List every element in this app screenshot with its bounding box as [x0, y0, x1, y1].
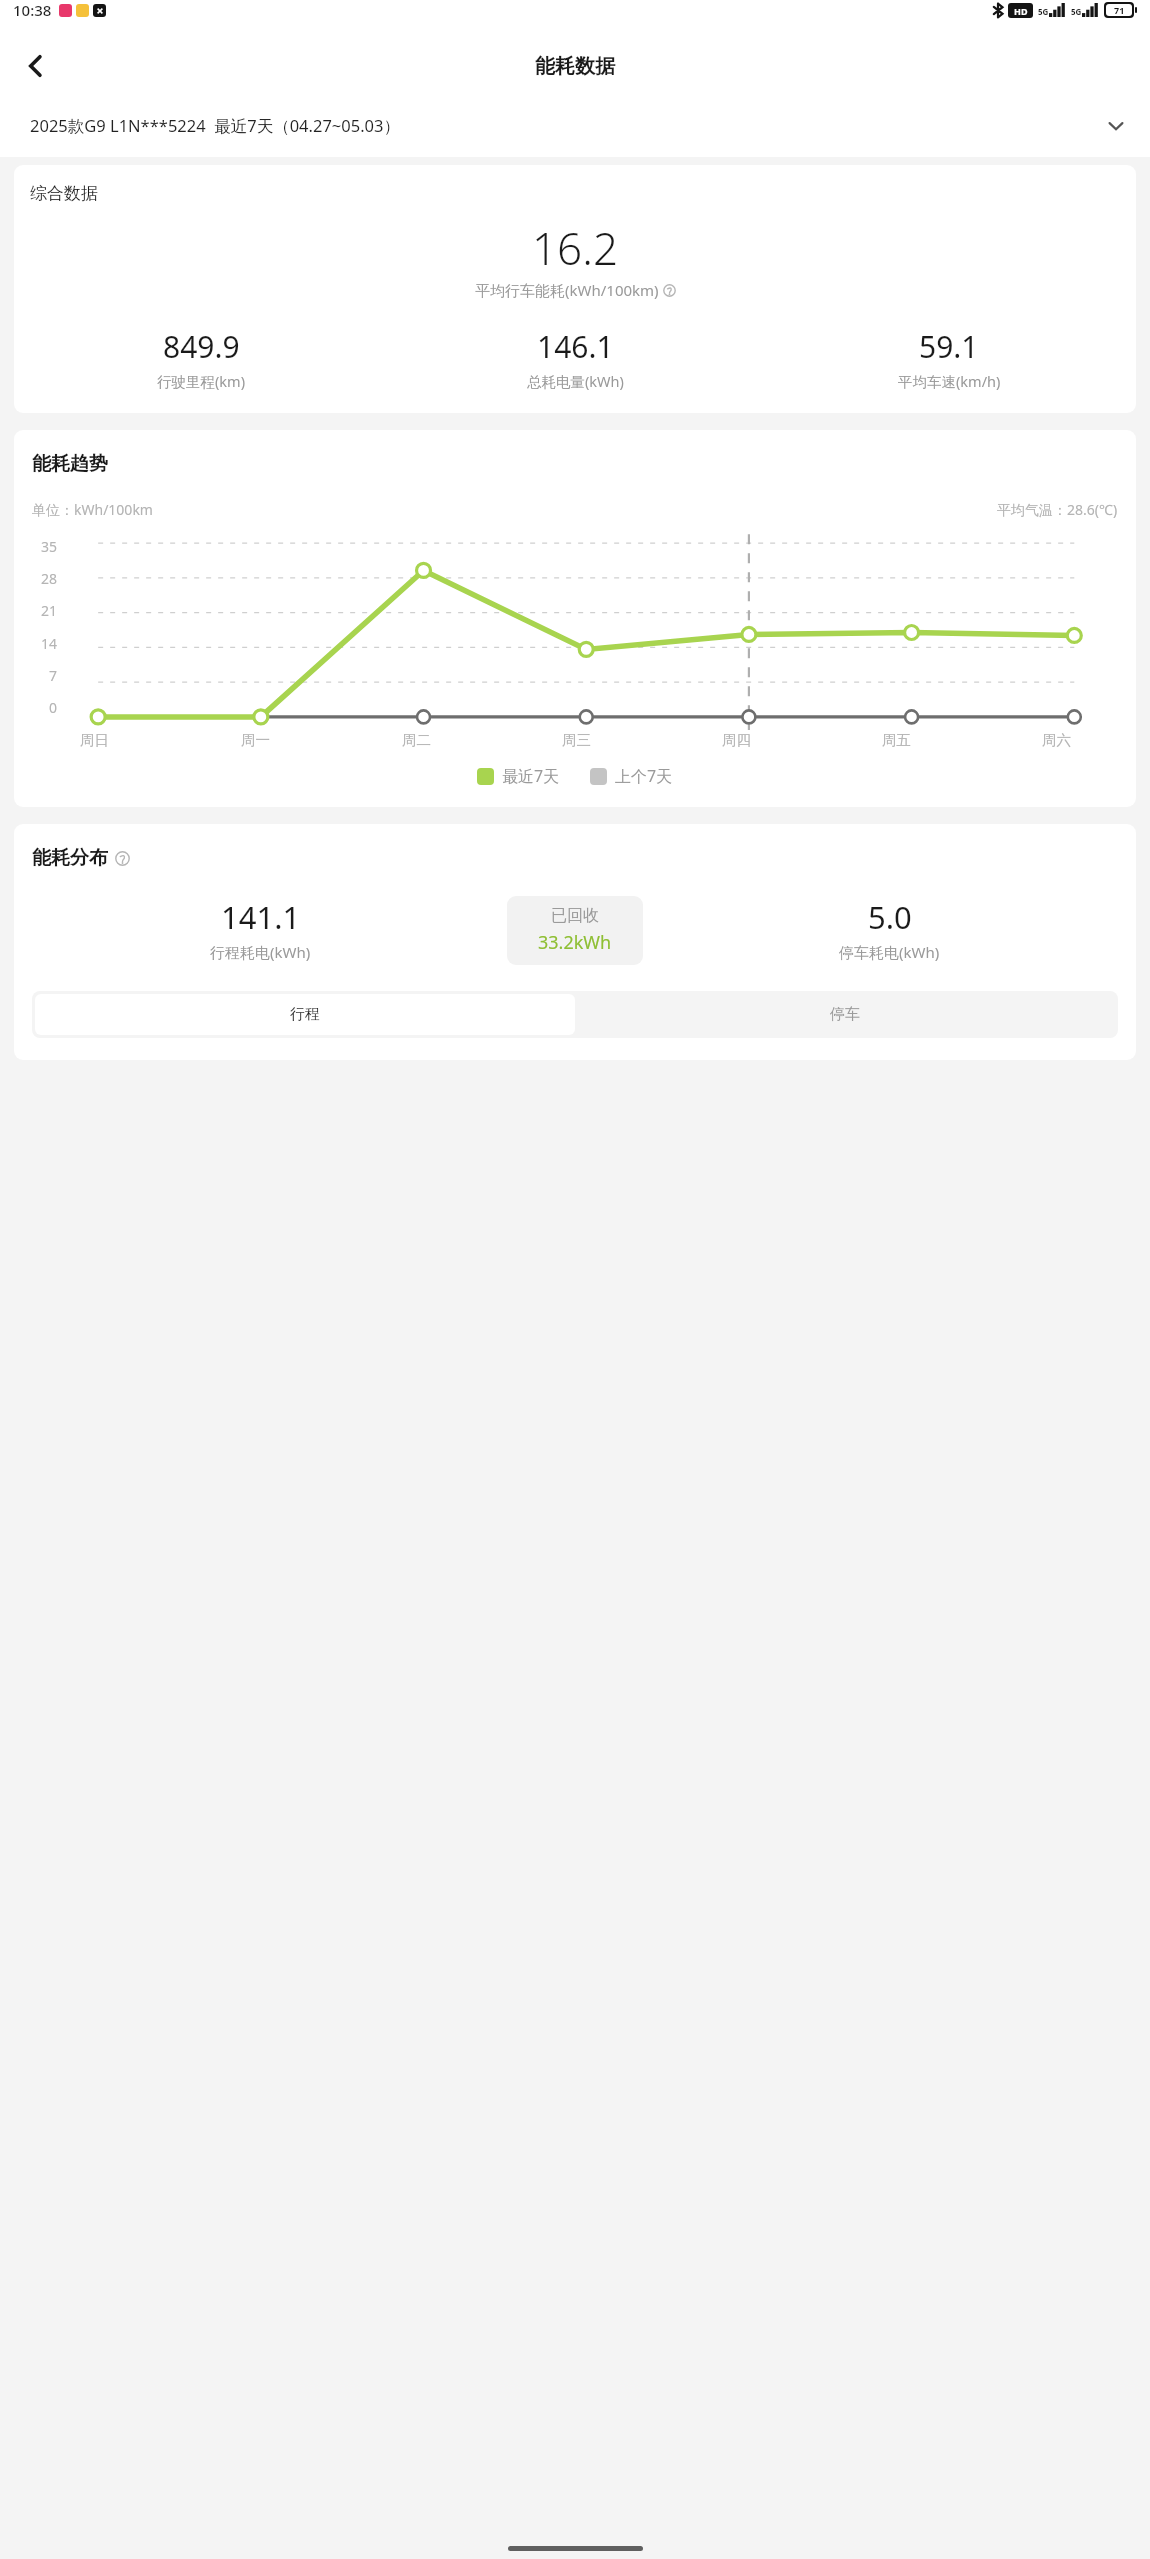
staticText: 141.1	[221, 896, 301, 938]
staticText: 综合数据	[30, 183, 98, 204]
staticText: 周一	[241, 731, 270, 749]
staticText: 周日	[80, 731, 109, 749]
button[interactable]: 最近7天	[477, 765, 560, 787]
staticText: 行驶里程(km)	[157, 371, 246, 391]
staticText: 5G	[1038, 6, 1049, 17]
staticText: 行程	[290, 1005, 320, 1024]
button[interactable]: 停车	[575, 1005, 1115, 1024]
staticText: 已回收	[551, 906, 599, 926]
staticText: 35	[41, 537, 58, 556]
staticText: 16.2	[14, 218, 1136, 278]
staticText: HD	[1014, 5, 1028, 17]
staticText: 59.1	[919, 326, 979, 367]
staticText: 7	[49, 666, 58, 685]
staticText: 2025款G9 L1N***5224 最近7天（04.27~05.03）	[30, 114, 400, 137]
staticText: 单位：kWh/100km	[32, 500, 153, 519]
staticText: 0	[49, 698, 58, 717]
staticText: 最近7天	[502, 765, 560, 787]
staticText: 周三	[562, 731, 591, 749]
staticText: 周二	[402, 731, 431, 749]
staticText: 总耗电量(kWh)	[527, 371, 624, 391]
staticText: 能耗分布	[32, 846, 108, 870]
staticText: 周五	[882, 731, 911, 749]
staticText: 周六	[1042, 731, 1071, 749]
button[interactable]: 行程	[35, 1005, 575, 1024]
staticText: 28	[41, 569, 58, 588]
staticText: 5.0	[868, 896, 912, 938]
staticText: 14	[41, 634, 58, 653]
button[interactable]: Back	[10, 40, 62, 92]
staticText: 33.2kWh	[538, 930, 612, 955]
staticText: 平均车速(km/h)	[898, 371, 1001, 391]
staticText: 平均气温：28.6(℃)	[997, 500, 1118, 519]
button[interactable]: 上个7天	[590, 765, 673, 787]
staticText: 周四	[722, 731, 751, 749]
staticText: 849.9	[163, 326, 240, 367]
staticText: 能耗趋势	[32, 452, 108, 476]
staticText: 行程耗电(kWh)	[210, 942, 311, 962]
staticText: 71	[1114, 4, 1125, 16]
staticText: 能耗数据	[535, 54, 615, 79]
staticText: 上个7天	[615, 765, 673, 787]
staticText: 停车耗电(kWh)	[839, 942, 940, 962]
staticText: 5G	[1071, 6, 1082, 17]
staticText: 21	[41, 601, 58, 620]
staticText: 停车	[830, 1005, 860, 1024]
button[interactable]: 2025款G9 L1N***5224 最近7天（04.27~05.03）	[30, 114, 1124, 137]
staticText: 平均行车能耗(kWh/100km)	[475, 280, 659, 300]
staticText: 146.1	[537, 326, 614, 367]
staticText: 10:38	[13, 0, 52, 20]
